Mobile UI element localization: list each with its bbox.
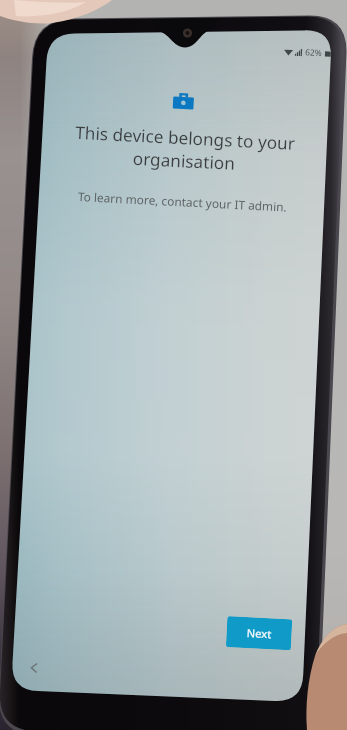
staticText: This device belongs to your organisation (26, 118, 343, 180)
staticText: Next (246, 625, 272, 641)
staticText: To learn more, contact your IT admin. (77, 188, 288, 215)
staticText: 62% (305, 46, 322, 59)
button[interactable]: Back (20, 654, 47, 681)
button[interactable]: Next (226, 616, 292, 650)
